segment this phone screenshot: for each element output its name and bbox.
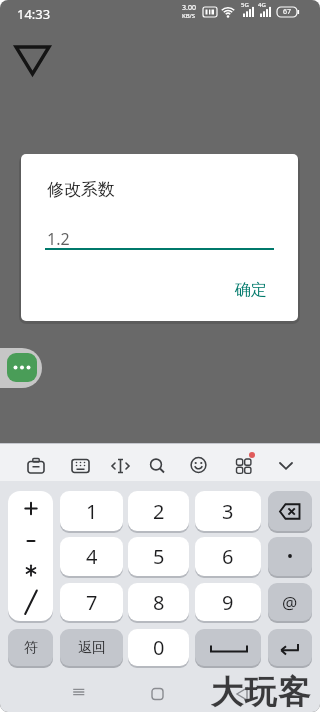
staticText: 符: [24, 639, 38, 657]
staticText: 3.00: [182, 3, 196, 13]
button[interactable]: 返回: [60, 629, 123, 666]
staticText: 0: [153, 634, 165, 661]
button[interactable]: [268, 629, 312, 666]
staticText: 7: [86, 589, 98, 616]
staticText: 确定: [235, 280, 267, 300]
button[interactable]: @: [268, 583, 312, 621]
staticText: 返回: [78, 639, 106, 657]
staticText: 67: [283, 7, 292, 17]
button[interactable]: [271, 445, 301, 479]
staticText: 修改系数: [47, 179, 115, 200]
button[interactable]: [141, 679, 175, 707]
staticText: 2: [153, 498, 165, 525]
staticText: 4G: [258, 1, 266, 9]
button[interactable]: 符: [8, 629, 53, 666]
staticText: 3: [222, 498, 234, 525]
button[interactable]: 确定: [223, 276, 279, 304]
button[interactable]: [195, 629, 261, 666]
staticText: 1: [86, 498, 98, 525]
button[interactable]: [62, 679, 96, 707]
button[interactable]: 3: [195, 491, 261, 531]
staticText: 5: [153, 543, 165, 570]
staticText: 14:33: [17, 5, 51, 21]
staticText: 5G: [241, 1, 249, 9]
staticText: 6: [222, 543, 234, 570]
staticText: @: [282, 591, 298, 614]
button[interactable]: [229, 445, 259, 479]
button[interactable]: 6: [195, 537, 261, 576]
button[interactable]: [268, 491, 312, 531]
button[interactable]: 0: [128, 629, 189, 666]
staticText: 8: [153, 589, 165, 616]
staticText: 4: [86, 543, 98, 570]
button[interactable]: [183, 445, 213, 479]
button[interactable]: 5: [128, 537, 189, 576]
button[interactable]: 8: [128, 583, 189, 621]
button[interactable]: 4: [60, 537, 123, 576]
button[interactable]: [142, 445, 172, 479]
button[interactable]: [7, 353, 37, 382]
button[interactable]: 7: [60, 583, 123, 621]
button[interactable]: 9: [195, 583, 261, 621]
button[interactable]: [21, 445, 51, 479]
staticText: 9: [222, 589, 234, 616]
staticText: 1.2: [47, 228, 70, 246]
staticText: 大玩客: [211, 672, 312, 710]
button[interactable]: [268, 537, 312, 576]
button[interactable]: 1: [60, 491, 123, 531]
button[interactable]: 2: [128, 491, 189, 531]
staticText: KB/S: [182, 12, 196, 20]
button[interactable]: [105, 445, 135, 479]
button[interactable]: [65, 445, 95, 479]
